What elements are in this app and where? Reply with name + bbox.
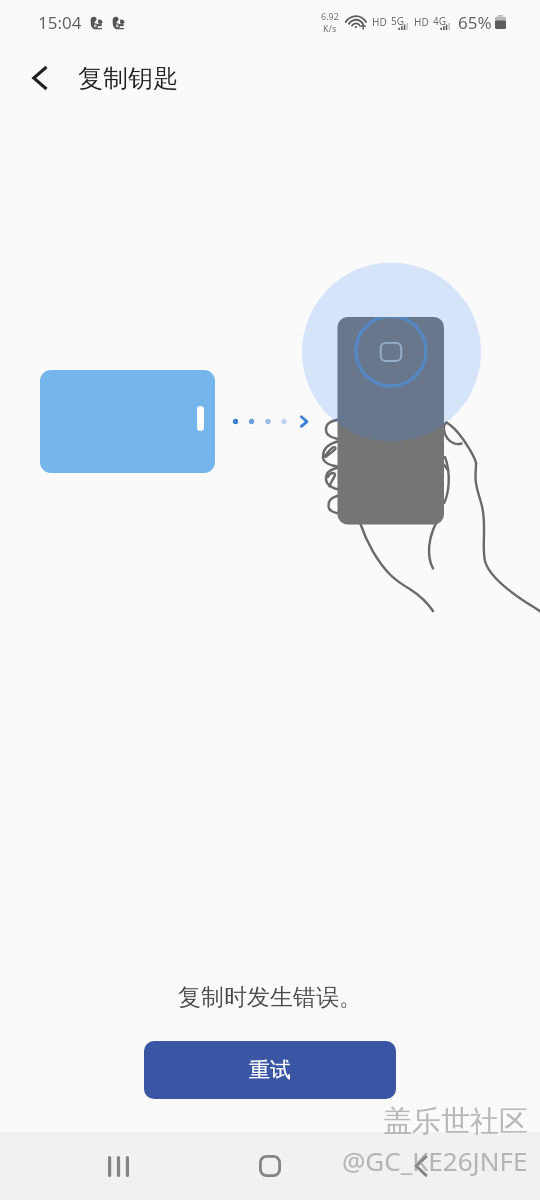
staticText: 65% bbox=[458, 11, 492, 34]
staticText: HD bbox=[414, 15, 429, 29]
button[interactable]: Back bbox=[18, 57, 60, 99]
staticText: 重试 bbox=[249, 1057, 291, 1083]
staticText: 15:04 bbox=[38, 11, 82, 34]
button[interactable]: Home bbox=[236, 1132, 304, 1200]
staticText: HD bbox=[372, 15, 387, 29]
staticText: 盖乐世社区 bbox=[383, 1103, 528, 1140]
staticText: K/s bbox=[323, 22, 337, 34]
button[interactable]: Recent apps bbox=[84, 1132, 152, 1200]
staticText: 复制时发生错误。 bbox=[178, 983, 362, 1012]
button[interactable]: 重试 bbox=[144, 1041, 396, 1099]
staticText: 6.92 bbox=[321, 10, 339, 22]
staticText: 4G bbox=[433, 14, 446, 28]
staticText: 复制钥匙 bbox=[78, 63, 178, 94]
button[interactable]: Back bbox=[388, 1132, 456, 1200]
staticText: @GC_KE26JNFE bbox=[342, 1143, 528, 1178]
staticText: 5G bbox=[391, 14, 404, 28]
